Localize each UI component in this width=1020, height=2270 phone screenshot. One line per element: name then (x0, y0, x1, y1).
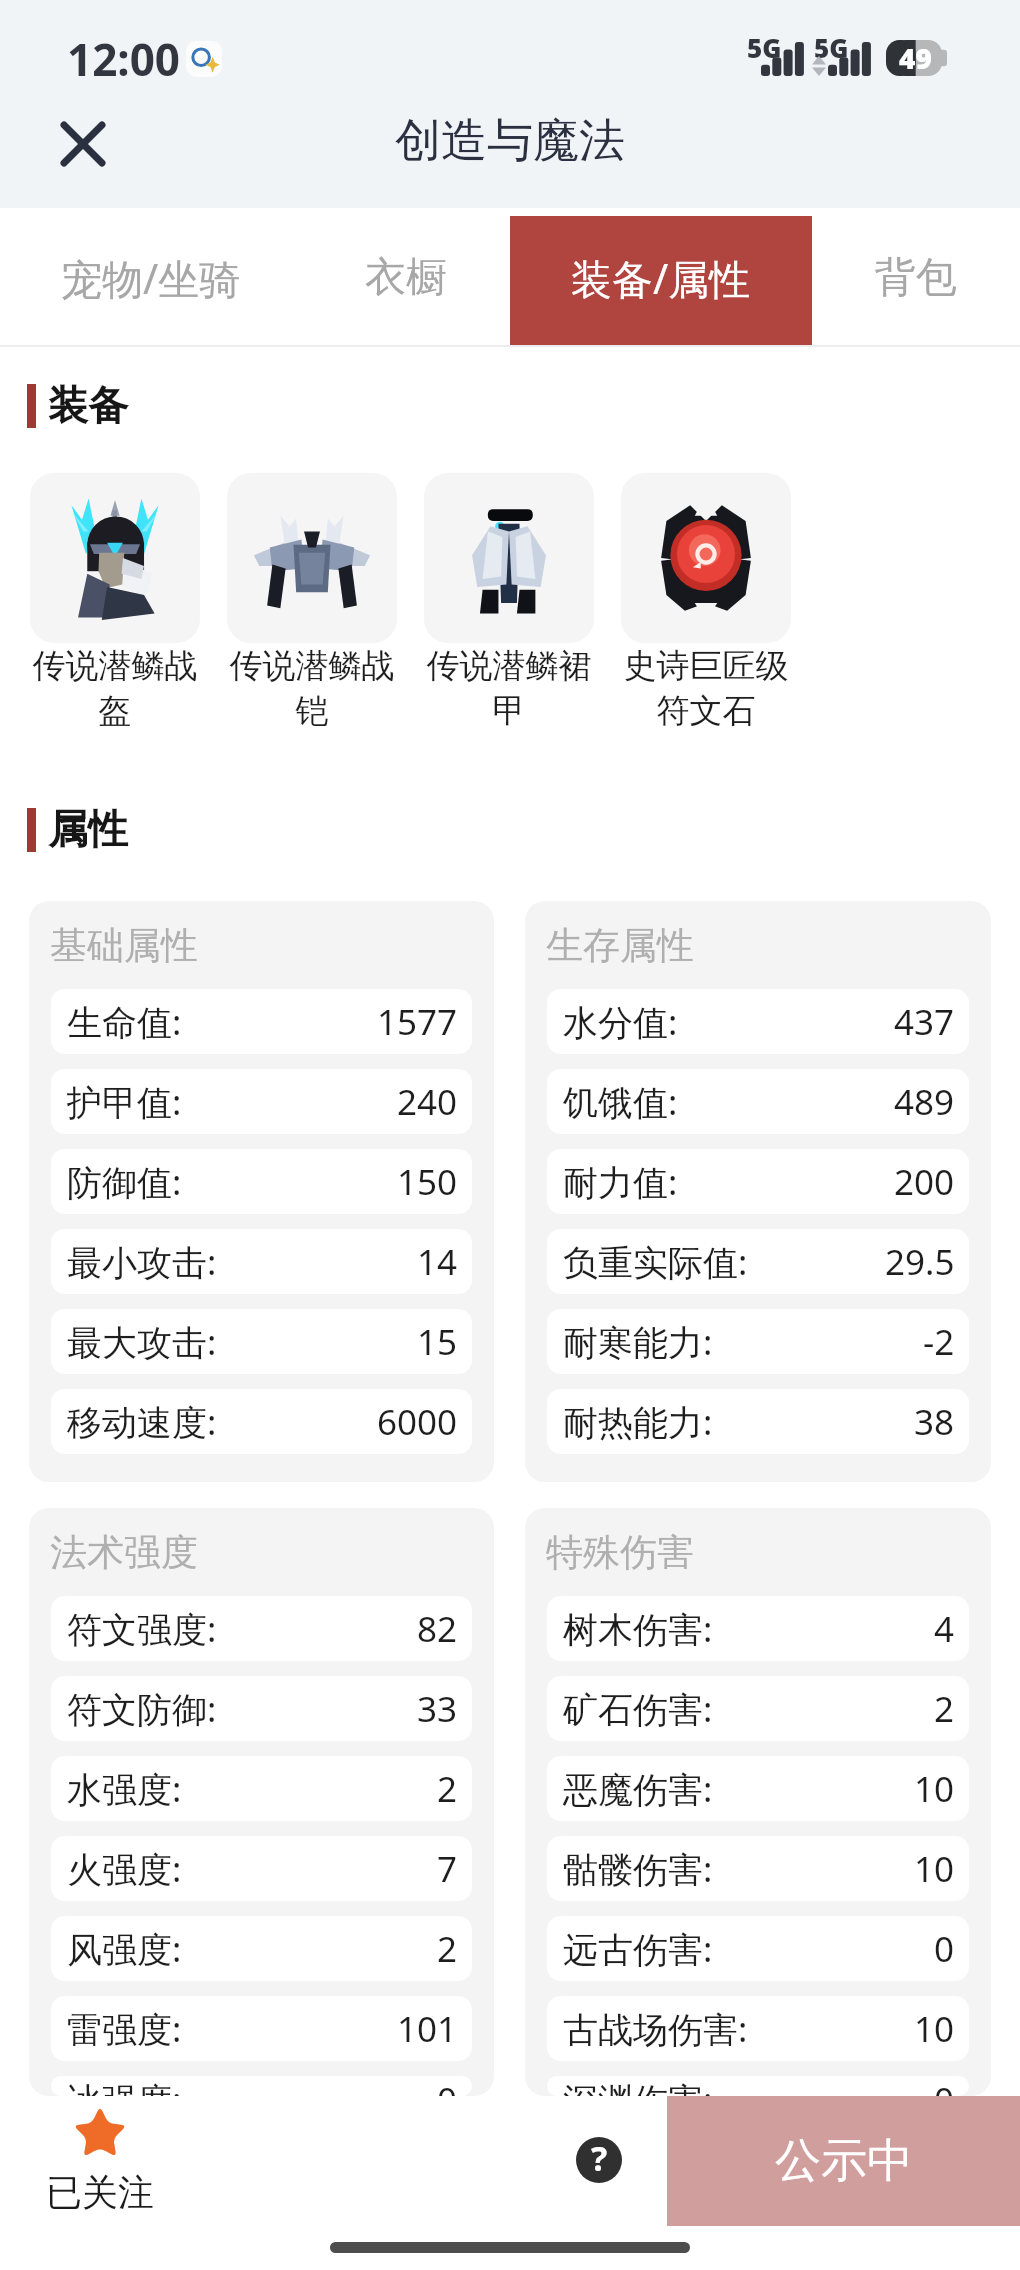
staticText: 15 (417, 1318, 458, 1366)
staticText: 基础属性 (50, 922, 198, 969)
staticText: 已关注 (46, 2170, 154, 2215)
staticText: 14 (417, 1238, 458, 1286)
staticText: 风强度: (67, 1925, 182, 1973)
staticText: 1577 (377, 998, 458, 1046)
staticText: 10 (914, 1765, 955, 1813)
staticText: 5G (747, 30, 782, 65)
staticText: 最大攻击: (67, 1318, 217, 1366)
staticText: 12:00 (67, 29, 181, 89)
button[interactable]: 史诗巨匠级符文石 (621, 473, 791, 731)
staticText: 雷强度: (67, 2005, 182, 2053)
staticText: 古战场伤害: (563, 2005, 748, 2053)
button[interactable]: 传说潜鳞战盔 (30, 473, 200, 731)
staticText: 树木伤害: (563, 1605, 713, 1653)
staticText: 特殊伤害 (546, 1529, 694, 1576)
staticText: 6000 (377, 1398, 458, 1446)
staticText: 冰强度: (67, 2076, 182, 2096)
staticText: 10 (914, 1845, 955, 1893)
staticText: 恶魔伤害: (563, 1765, 713, 1813)
staticText: 深渊伤害: (563, 2076, 713, 2096)
button[interactable]: 装备/属性 (533, 208, 788, 347)
staticText: 82 (417, 1605, 458, 1653)
staticText: 耐热能力: (563, 1398, 713, 1446)
staticText: 0 (934, 2076, 955, 2096)
staticText: 7 (437, 1845, 458, 1893)
staticText: 装备 (48, 380, 128, 430)
staticText: 200 (894, 1158, 955, 1206)
staticText: 最小攻击: (67, 1238, 217, 1286)
staticText: 远古伤害: (563, 1925, 713, 1973)
button[interactable]: 公示中 (667, 2096, 1020, 2226)
staticText: 489 (894, 1078, 955, 1126)
staticText: 4 (934, 1605, 955, 1653)
staticText: 240 (397, 1078, 458, 1126)
staticText: 101 (397, 2005, 458, 2053)
staticText: 衣橱 (365, 252, 447, 304)
button[interactable]: 传说潜鳞战铠 (227, 473, 397, 731)
staticText: 装备/属性 (571, 250, 751, 306)
staticText: 生存属性 (546, 922, 694, 969)
button[interactable]: 已关注 (40, 2104, 160, 2215)
staticText: 宠物/坐骑 (61, 250, 241, 306)
staticText: 2 (934, 1685, 955, 1733)
staticText: 矿石伤害: (563, 1685, 713, 1733)
staticText: 耐寒能力: (563, 1318, 713, 1366)
staticText: 传说潜鳞战铠 (227, 645, 397, 731)
staticText: 公示中 (775, 2132, 913, 2190)
staticText: 属性 (48, 804, 128, 854)
staticText: 33 (417, 1685, 458, 1733)
staticText: 符文强度: (67, 1605, 217, 1653)
staticText: 0 (934, 1925, 955, 1973)
staticText: 移动速度: (67, 1398, 217, 1446)
staticText: 背包 (875, 252, 957, 304)
staticText: 法术强度 (50, 1529, 198, 1576)
staticText: 负重实际值: (563, 1238, 748, 1286)
staticText: 29.5 (885, 1238, 955, 1286)
staticText: -2 (923, 1318, 955, 1366)
staticText: 2 (437, 1765, 458, 1813)
staticText: ? (591, 2137, 608, 2181)
staticText: 49 (899, 39, 932, 75)
staticText: 创造与魔法 (395, 112, 625, 170)
staticText: 传说潜鳞裙甲 (424, 645, 594, 731)
staticText: 生命值: (67, 998, 182, 1046)
staticText: 防御值: (67, 1158, 182, 1206)
staticText: 传说潜鳞战盔 (30, 645, 200, 731)
button[interactable]: 背包 (788, 208, 1020, 347)
staticText: 史诗巨匠级符文石 (621, 645, 791, 731)
button[interactable]: 传说潜鳞裙甲 (424, 473, 594, 731)
staticText: 骷髅伤害: (563, 1845, 713, 1893)
staticText: 耐力值: (563, 1158, 678, 1206)
staticText: 0 (437, 2076, 458, 2096)
staticText: 护甲值: (67, 1078, 182, 1126)
staticText: 2 (437, 1925, 458, 1973)
staticText: 38 (914, 1398, 955, 1446)
staticText: 饥饿值: (563, 1078, 678, 1126)
staticText: 水强度: (67, 1765, 182, 1813)
button[interactable]: 衣橱 (278, 208, 533, 347)
staticText: 符文防御: (67, 1685, 217, 1733)
staticText: 5G (814, 30, 849, 65)
button[interactable]: 宠物/坐骑 (23, 208, 278, 347)
staticText: 水分值: (563, 998, 678, 1046)
staticText: 437 (894, 998, 955, 1046)
button[interactable]: Close (38, 99, 127, 188)
staticText: 火强度: (67, 1845, 182, 1893)
button[interactable]: Help (576, 2137, 622, 2183)
staticText: 10 (914, 2005, 955, 2053)
staticText: 150 (397, 1158, 458, 1206)
